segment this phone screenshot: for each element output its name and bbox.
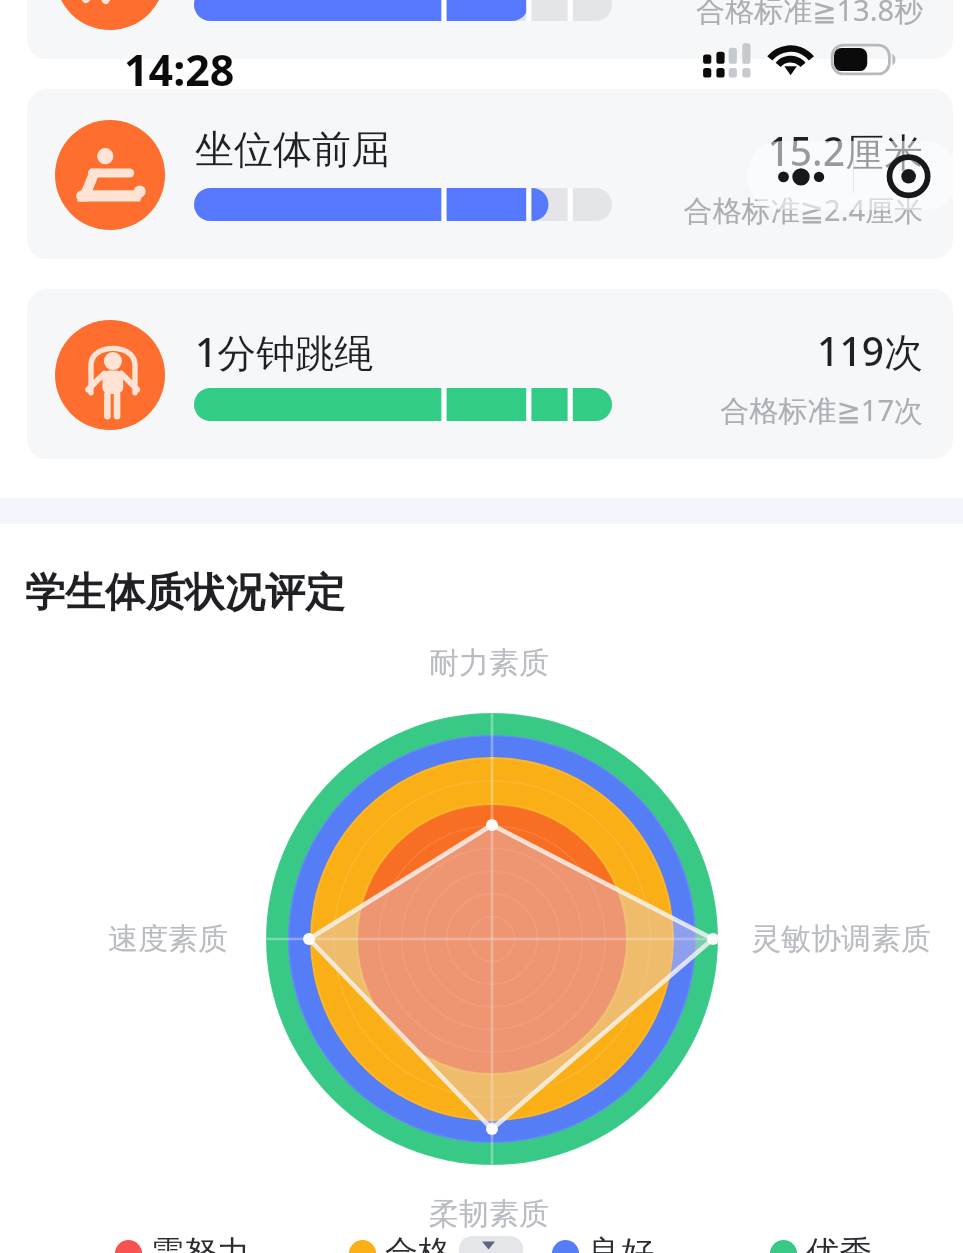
button[interactable]: More options — [747, 141, 854, 210]
staticText: 优秀 — [806, 1232, 872, 1253]
staticText: 学生体质状况评定 — [25, 567, 345, 617]
button[interactable]: 1分钟跳绳 — [27, 289, 953, 459]
button[interactable]: Scroll down — [459, 1236, 523, 1253]
button[interactable]: 优秀 — [770, 1232, 872, 1253]
staticText: 灵敏协调素质 — [751, 920, 931, 958]
staticText: 速度素质 — [108, 920, 228, 958]
button[interactable]: 合格 — [349, 1232, 451, 1253]
staticText: 良好 — [588, 1232, 654, 1253]
button[interactable]: 良好 — [552, 1232, 654, 1253]
button[interactable]: 坐位体前屈 — [27, 89, 953, 259]
staticText: 合格 — [385, 1232, 451, 1253]
staticText: 合格标准≧13.8秒 — [27, 0, 923, 30]
staticText: 坐位体前屈 — [195, 125, 390, 174]
staticText: 119次 — [27, 324, 923, 377]
staticText: 合格标准≧17次 — [27, 390, 923, 430]
staticText: 14:28 — [124, 40, 235, 99]
button[interactable]: 50米跑 — [27, 0, 953, 59]
staticText: 需努力 — [151, 1232, 250, 1253]
staticText: 耐力素质 — [429, 644, 549, 682]
staticText: 合格标准≧2.4厘米 — [27, 190, 923, 230]
button[interactable]: 需努力 — [115, 1232, 250, 1253]
staticText: 15.2厘米 — [27, 124, 923, 177]
button[interactable]: Close mini program — [854, 141, 958, 210]
staticText: 柔韧素质 — [429, 1195, 549, 1233]
staticText: 1分钟跳绳 — [195, 325, 374, 378]
